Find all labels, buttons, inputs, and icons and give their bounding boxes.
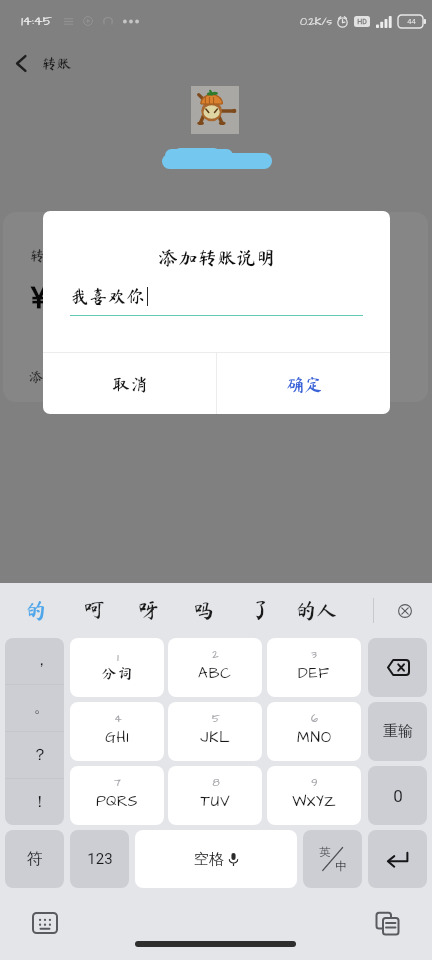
staticText: 重输 <box>383 722 413 741</box>
staticText: 空格 <box>194 850 224 869</box>
staticText: ABC <box>198 663 232 684</box>
staticText: TUV <box>200 791 231 812</box>
staticText: 添加转账说明 <box>158 248 276 267</box>
button[interactable]: ， <box>5 638 64 684</box>
staticText: 添加转账说明 <box>29 370 113 384</box>
staticText: 123 <box>87 850 113 868</box>
button[interactable]: 6 <box>267 702 361 761</box>
staticText: 呀 <box>138 600 159 621</box>
staticText: 1 <box>117 650 119 665</box>
button[interactable]: 2 <box>168 638 262 697</box>
button[interactable]: 的 <box>17 583 53 638</box>
button[interactable]: 0 <box>368 766 427 825</box>
staticText: 3 <box>311 647 317 662</box>
staticText: ？ <box>32 745 48 765</box>
staticText: 5 <box>212 711 220 726</box>
staticText: PQRS <box>96 791 138 812</box>
button[interactable]: Backspace <box>368 638 427 697</box>
staticText: ！ <box>32 792 48 812</box>
staticText: 的人 <box>295 600 337 621</box>
button[interactable]: 了 <box>242 583 278 638</box>
staticText: 。 <box>34 698 49 717</box>
button[interactable]: 符 <box>5 830 64 888</box>
button[interactable]: 呵 <box>76 583 112 638</box>
staticText: 符 <box>27 849 43 869</box>
button[interactable]: 。 <box>5 685 64 731</box>
button[interactable]: 7 <box>70 766 164 825</box>
button[interactable]: 确定 <box>217 353 390 414</box>
staticText: 14:45 <box>21 12 52 30</box>
staticText: 转账金额 <box>29 248 90 263</box>
staticText: 的 <box>25 600 46 621</box>
button[interactable]: 空格 <box>135 830 297 888</box>
staticText: 2 <box>212 647 219 662</box>
button[interactable]: Switch language <box>303 830 362 888</box>
staticText: ¥ <box>31 280 47 315</box>
staticText: 0 <box>393 786 403 806</box>
staticText: JKL <box>200 727 231 748</box>
staticText: MNO <box>297 727 332 748</box>
button[interactable]: 123 <box>70 830 129 888</box>
button[interactable]: 取消 <box>43 353 216 414</box>
staticText: 9 <box>311 775 318 790</box>
staticText: 8 <box>212 775 220 790</box>
button[interactable]: ？ <box>5 732 64 778</box>
staticText: 英 <box>319 845 331 859</box>
staticText: 吗 <box>193 600 214 621</box>
button[interactable]: Keyboard layout <box>24 906 66 940</box>
staticText: ••••• <box>225 152 238 170</box>
button[interactable]: 吗 <box>185 583 221 638</box>
button[interactable]: ！ <box>5 779 64 825</box>
staticText: 确定 <box>286 375 322 393</box>
staticText: HD <box>357 18 367 26</box>
button[interactable]: 的人 <box>292 583 340 638</box>
button[interactable]: 1 <box>70 638 164 697</box>
staticText: 中 <box>335 859 347 873</box>
staticText: 我喜欢你 <box>70 287 145 306</box>
button[interactable]: 5 <box>168 702 262 761</box>
button[interactable]: 4 <box>70 702 164 761</box>
button[interactable]: 3 <box>267 638 361 697</box>
staticText: 4 <box>114 711 122 726</box>
staticText: ， <box>34 651 49 670</box>
staticText: DEF <box>298 663 330 684</box>
staticText: 6 <box>311 711 318 726</box>
staticText: 44 <box>407 17 416 26</box>
staticText: 取消 <box>112 375 148 393</box>
staticText: GHI <box>105 727 130 748</box>
button[interactable]: 呀 <box>130 583 166 638</box>
staticText: WXYZ <box>292 791 336 812</box>
staticText: 呵 <box>84 600 105 621</box>
staticText: 转账 <box>41 56 72 71</box>
button[interactable]: Back <box>7 49 35 77</box>
staticText: 了 <box>250 600 271 621</box>
button[interactable]: 8 <box>168 766 262 825</box>
staticText: 0.2K/s <box>300 14 332 29</box>
button[interactable]: 9 <box>267 766 361 825</box>
staticText: 分词 <box>101 666 134 681</box>
button[interactable]: Enter <box>368 830 427 888</box>
button[interactable]: Clipboard <box>366 906 408 940</box>
staticText: 7 <box>114 775 121 790</box>
button[interactable]: Close candidates <box>378 583 432 638</box>
button[interactable]: 重输 <box>368 702 427 761</box>
